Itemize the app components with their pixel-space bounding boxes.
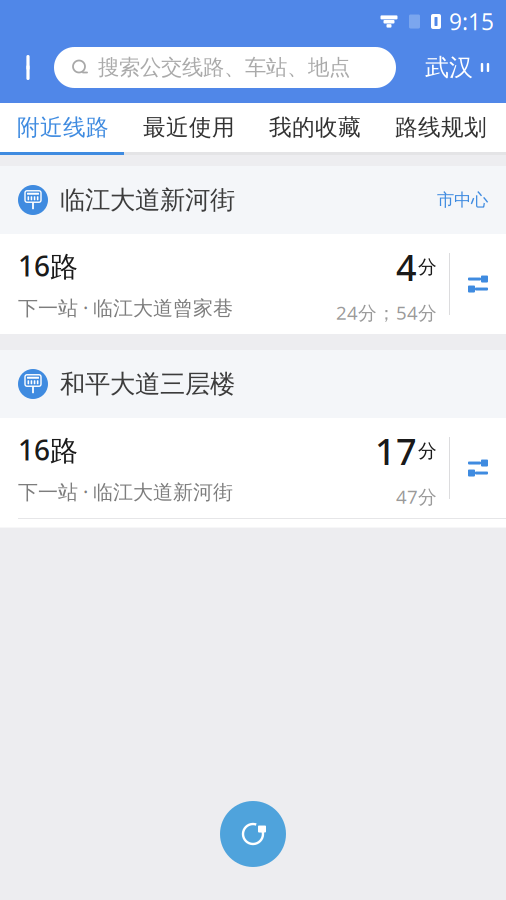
button[interactable]: 路线规划	[378, 103, 504, 152]
button[interactable]: 武汉	[419, 41, 498, 93]
button[interactable]: 582路	[0, 519, 506, 619]
button[interactable]: 切换方向	[450, 241, 506, 327]
staticText: 最近使用	[143, 114, 235, 141]
staticText: 16路	[18, 431, 78, 468]
button[interactable]: 和平大道三层楼	[0, 350, 506, 418]
button[interactable]: 搜索公交线路、车站、地点	[54, 47, 396, 88]
button[interactable]: 16路	[0, 418, 506, 518]
button[interactable]: 16路	[0, 234, 506, 334]
staticText: 16路	[18, 247, 78, 284]
staticText: 临江大道新河街	[60, 184, 235, 215]
staticText: 24分；54分	[336, 300, 437, 325]
staticText: 附近线路	[17, 114, 109, 141]
staticText: 下一站 · 临江大道曾家巷	[18, 294, 233, 321]
staticText: 下一站 · 临江大道新河街	[18, 478, 233, 505]
button[interactable]: 最近使用	[126, 103, 252, 152]
button[interactable]: 我的收藏	[252, 103, 378, 152]
staticText: 市中心	[437, 189, 488, 211]
staticText: 我的收藏	[269, 114, 361, 141]
button[interactable]: 苗家码头	[0, 805, 506, 873]
button[interactable]: 临江大道新河街	[0, 166, 506, 234]
staticText: 分	[418, 440, 437, 462]
button[interactable]: 和平大道三角路	[0, 736, 506, 804]
staticText: 9:15	[449, 6, 494, 36]
button[interactable]: 附近线路	[0, 103, 126, 152]
staticText: 搜索公交线路、车站、地点	[98, 54, 350, 81]
staticText: 和平大道三层楼	[60, 368, 235, 399]
staticText: 4	[396, 243, 417, 291]
button[interactable]: 刷新	[220, 801, 286, 867]
staticText: 47分	[396, 484, 437, 509]
button[interactable]: 切换方向	[450, 425, 506, 511]
staticText: 路线规划	[395, 114, 487, 141]
staticText: 武汉	[425, 53, 473, 82]
staticText: 17	[375, 427, 417, 475]
staticText: 分	[418, 256, 437, 278]
button[interactable]: 返回	[2, 41, 54, 93]
